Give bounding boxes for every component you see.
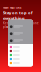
staticText: NEW FEATURE	[3, 6, 21, 9]
staticText: Stay on top of everything	[3, 10, 33, 21]
staticText: Keep all your tasks in one place	[3, 22, 39, 29]
